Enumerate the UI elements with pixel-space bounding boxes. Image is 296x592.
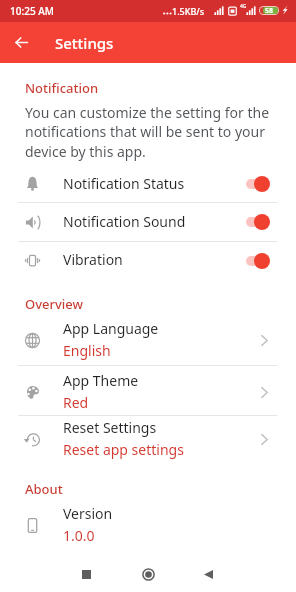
staticText: About xyxy=(25,480,63,498)
staticText: Red xyxy=(63,393,89,412)
staticText: Vibration xyxy=(63,250,123,269)
staticText: Settings xyxy=(55,33,114,53)
button[interactable]: Back xyxy=(192,559,224,591)
button[interactable]: Reset Settings xyxy=(0,416,296,467)
button[interactable]: App Language xyxy=(0,312,296,363)
button[interactable]: Vibration xyxy=(0,242,296,281)
button[interactable]: Back xyxy=(8,29,35,56)
staticText: English xyxy=(63,341,111,360)
staticText: Reset app settings xyxy=(63,440,184,459)
staticText: App Theme xyxy=(63,371,139,390)
button[interactable]: Notification Sound xyxy=(0,202,296,241)
button[interactable]: Notification Status xyxy=(0,162,296,201)
staticText: Notification xyxy=(25,79,99,97)
staticText: 58 xyxy=(265,6,274,15)
staticText: 10:25 AM xyxy=(10,4,54,18)
staticText: Notification Status xyxy=(63,174,185,193)
staticText: Overview xyxy=(25,295,84,313)
button[interactable]: Version xyxy=(0,497,296,548)
staticText: 4G xyxy=(240,3,247,10)
button[interactable]: App Theme xyxy=(0,364,296,415)
staticText: 1.0.0 xyxy=(63,526,95,545)
staticText: Notification Sound xyxy=(63,212,186,231)
button[interactable]: Recent apps xyxy=(71,559,102,590)
staticText: 1.5KB/s xyxy=(172,5,205,17)
staticText: Version xyxy=(63,504,113,523)
staticText: You can customize the setting for the no… xyxy=(25,103,270,161)
staticText: App Language xyxy=(63,319,159,338)
staticText: Reset Settings xyxy=(63,418,157,437)
button[interactable]: Home xyxy=(132,559,164,591)
